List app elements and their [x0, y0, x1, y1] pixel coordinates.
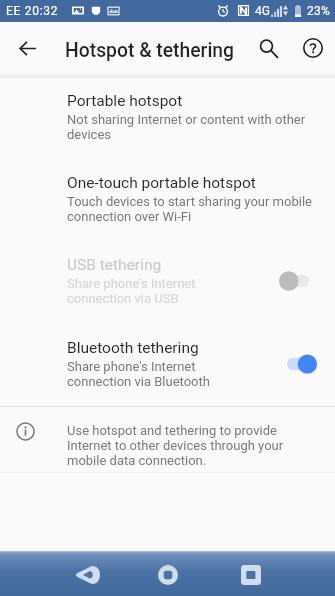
staticText: Share phone's Internet connection via Bl…: [67, 359, 247, 389]
button[interactable]: Help: [297, 32, 329, 64]
staticText: 4G: [255, 4, 270, 18]
button[interactable]: Recent apps: [229, 553, 273, 596]
button[interactable]: Portable hotspot: [0, 92, 335, 144]
staticText: Not sharing Internet or content with oth…: [67, 112, 317, 142]
staticText: Use hotspot and tethering to provide Int…: [67, 423, 305, 468]
staticText: Portable hotspot: [67, 92, 183, 110]
staticText: Share phone's Internet connection via US…: [67, 276, 247, 306]
button[interactable]: One-touch portable hotspot: [0, 174, 335, 226]
button[interactable]: Search: [253, 33, 285, 65]
button[interactable]: Home: [146, 553, 190, 596]
staticText: Bluetooth tethering: [67, 339, 199, 357]
button[interactable]: Back: [65, 553, 109, 596]
staticText: Hotspot & tethering: [65, 39, 234, 62]
staticText: 23%: [307, 4, 331, 18]
staticText: Touch devices to start sharing your mobi…: [67, 194, 317, 224]
staticText: USB tethering: [67, 256, 162, 274]
staticText: One-touch portable hotspot: [67, 174, 256, 192]
staticText: EE 20:32: [6, 4, 59, 18]
button[interactable]: Navigate up: [11, 32, 43, 64]
button[interactable]: Bluetooth tethering: [0, 339, 335, 391]
button[interactable]: USB tethering: [0, 256, 335, 308]
